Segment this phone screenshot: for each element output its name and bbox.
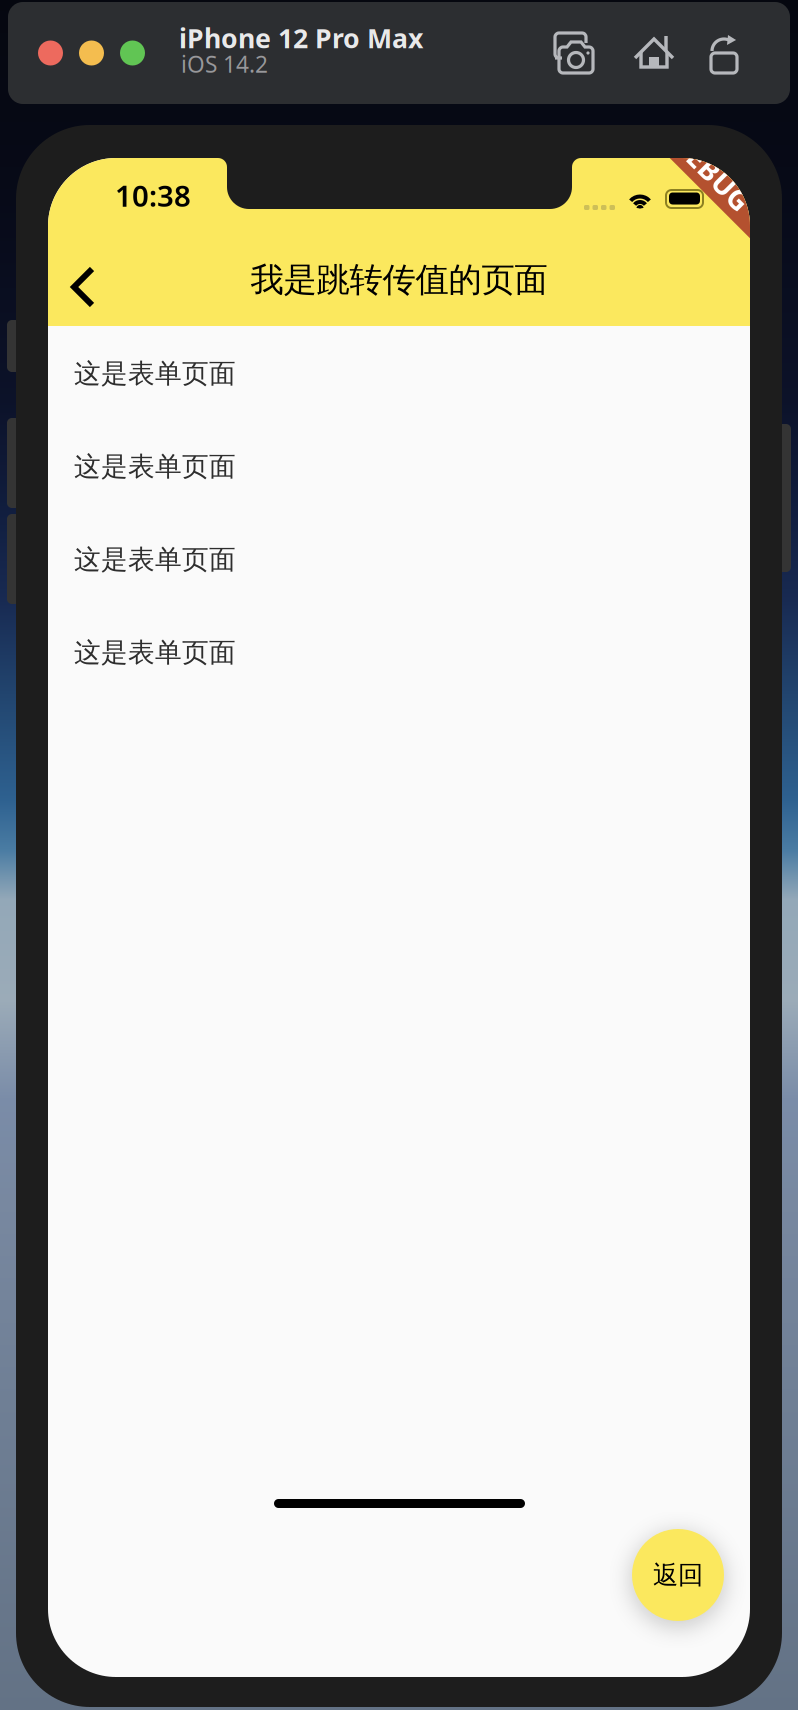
- staticText: iPhone 12 Pro Max: [179, 20, 423, 56]
- staticText: 这是表单页面: [74, 636, 236, 669]
- staticText: 这是表单页面: [74, 543, 236, 576]
- staticText: 我是跳转传值的页面: [250, 259, 547, 300]
- button[interactable]: 这是表单页面: [48, 606, 750, 699]
- button[interactable]: 这是表单页面: [48, 327, 750, 420]
- button[interactable]: Screenshot: [540, 26, 596, 82]
- button[interactable]: Home: [626, 22, 682, 78]
- button[interactable]: 这是表单页面: [48, 420, 750, 513]
- staticText: 返回: [653, 1559, 703, 1590]
- button[interactable]: 这是表单页面: [48, 513, 750, 606]
- staticText: DEBUG: [666, 147, 762, 185]
- staticText: 10:38: [115, 176, 191, 215]
- staticText: 这是表单页面: [74, 450, 236, 483]
- staticText: 这是表单页面: [74, 357, 236, 390]
- button[interactable]: Back: [66, 252, 126, 322]
- button[interactable]: Rotate: [694, 25, 750, 81]
- button[interactable]: 返回: [632, 1529, 724, 1621]
- staticText: iOS 14.2: [181, 49, 268, 79]
